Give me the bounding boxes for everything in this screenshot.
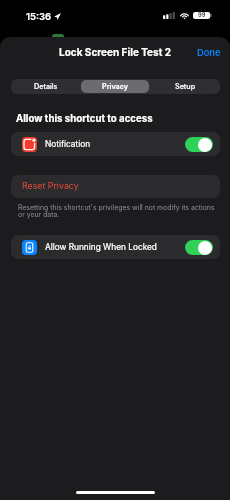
staticText: Setup: [175, 82, 196, 91]
button[interactable]: Allow Running When Locked: [11, 235, 220, 259]
staticText: Lock Screen File Test 2: [59, 46, 172, 58]
button[interactable]: Setup: [151, 80, 219, 93]
staticText: Resetting this shortcut's privileges wil…: [18, 203, 217, 219]
button[interactable]: Toggle: [185, 240, 213, 255]
staticText: Allow Running When Locked: [45, 242, 157, 252]
button[interactable]: Notification: [11, 132, 220, 156]
button[interactable]: Done: [197, 47, 221, 58]
button[interactable]: Details: [12, 80, 79, 93]
staticText: Details: [34, 82, 58, 91]
staticText: Privacy: [102, 82, 129, 91]
button[interactable]: Reset Privacy: [11, 175, 220, 198]
staticText: Allow this shortcut to access: [16, 113, 153, 125]
staticText: 15:36: [26, 11, 52, 22]
staticText: 99: [198, 12, 206, 19]
button[interactable]: Privacy: [81, 80, 149, 93]
staticText: Reset Privacy: [22, 180, 79, 191]
button[interactable]: Toggle: [185, 137, 213, 152]
staticText: Notification: [45, 139, 91, 149]
staticText: Done: [197, 47, 221, 58]
